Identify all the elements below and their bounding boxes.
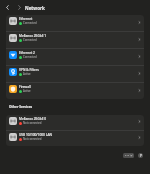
- staticText: Ethernet: [19, 17, 33, 21]
- button[interactable]: Forward: [16, 4, 23, 11]
- staticText: VPN & Filters: [19, 68, 39, 72]
- staticText: Other Services: [9, 105, 33, 109]
- staticText: Not connected: [23, 137, 42, 141]
- button[interactable]: More options: [123, 153, 134, 158]
- button[interactable]: Firewall: [6, 83, 144, 99]
- button[interactable]: Ethernet: [6, 15, 144, 31]
- staticText: Connected: [23, 55, 37, 59]
- button[interactable]: Back: [4, 4, 11, 11]
- staticText: Connected: [23, 21, 37, 25]
- button[interactable]: Ethernet 2: [6, 49, 144, 65]
- staticText: Firewall: [19, 85, 31, 89]
- button[interactable]: USB 10/100/1000 LAN: [6, 131, 144, 146]
- button[interactable]: Mellanox 25GbE 1: [6, 32, 144, 48]
- button[interactable]: Help: [138, 153, 143, 158]
- staticText: Connected: [23, 38, 37, 42]
- button[interactable]: Mellanox 25GbE 0: [6, 115, 144, 130]
- staticText: Network: [25, 5, 45, 11]
- staticText: Active: [23, 89, 31, 93]
- staticText: USB 10/100/1000 LAN: [19, 133, 52, 137]
- staticText: Mellanox 25GbE 0: [19, 117, 47, 121]
- staticText: Active: [23, 72, 31, 76]
- staticText: Mellanox 25GbE 1: [19, 34, 47, 38]
- button[interactable]: VPN & Filters: [6, 66, 144, 82]
- staticText: Ethernet 2: [19, 51, 35, 55]
- staticText: Not connected: [23, 121, 42, 125]
- staticText: ?: [140, 153, 142, 158]
